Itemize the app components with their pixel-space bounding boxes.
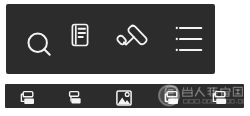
button[interactable]: Layout xyxy=(212,90,228,106)
button[interactable]: Articles xyxy=(65,20,95,50)
button[interactable]: Search xyxy=(18,22,48,52)
button[interactable]: Dashboard xyxy=(164,90,180,106)
button[interactable]: Split view xyxy=(20,90,36,106)
button[interactable]: Feed xyxy=(67,90,83,106)
button[interactable]: Paint roller xyxy=(120,20,150,50)
button[interactable]: List xyxy=(175,24,205,54)
button[interactable]: Image xyxy=(116,90,132,106)
